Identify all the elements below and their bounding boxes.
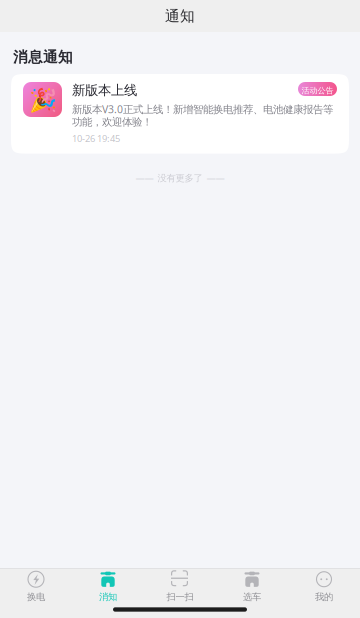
button[interactable]: 扫一扫 bbox=[144, 569, 216, 603]
staticText: 新版本上线 bbox=[72, 82, 137, 98]
staticText: 🎉 bbox=[28, 88, 56, 113]
staticText: 消知 bbox=[99, 591, 117, 603]
button[interactable]: 消知 bbox=[72, 569, 144, 603]
staticText: 扫一扫 bbox=[166, 591, 193, 603]
staticText: 新版本V3.0正式上线！新增智能换电推荐、电池健康报告等功能，欢迎体验！ bbox=[72, 102, 333, 128]
staticText: 10-26 19:45 bbox=[72, 132, 120, 145]
staticText: 选车 bbox=[243, 591, 261, 603]
button[interactable]: 我的 bbox=[288, 569, 360, 603]
button[interactable]: 🎉 bbox=[11, 74, 349, 154]
staticText: 通知 bbox=[165, 7, 195, 25]
staticText: 活动公告 bbox=[301, 86, 333, 95]
button[interactable]: 换电 bbox=[0, 569, 72, 603]
staticText: —— 没有更多了 —— bbox=[135, 172, 224, 184]
staticText: 消息通知 bbox=[13, 48, 73, 66]
button[interactable]: 选车 bbox=[216, 569, 288, 603]
staticText: 我的 bbox=[315, 591, 333, 603]
staticText: 换电 bbox=[27, 591, 45, 603]
